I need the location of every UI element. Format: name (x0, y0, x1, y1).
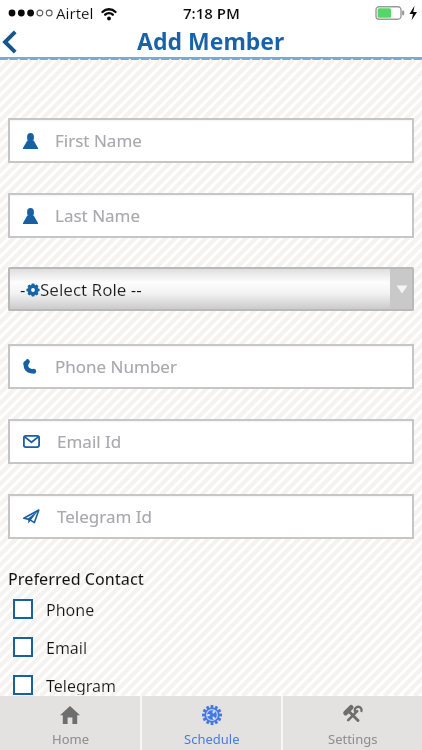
button[interactable]: Email (13, 637, 88, 657)
button[interactable]: Telegram (13, 675, 117, 695)
staticText: Last Name (55, 204, 141, 227)
button[interactable]: - (8, 267, 414, 311)
button[interactable]: Home (0, 696, 140, 750)
button[interactable]: Phone (13, 599, 95, 619)
button[interactable]: Email Id (8, 419, 414, 464)
button[interactable]: First Name (8, 118, 414, 163)
staticText: Telegram (46, 675, 117, 695)
staticText: Email Id (57, 430, 122, 453)
button[interactable]: Schedule (142, 696, 281, 750)
button[interactable]: Phone Number (8, 344, 414, 389)
staticText: First Name (55, 129, 142, 152)
staticText: Email (46, 637, 88, 657)
staticText: Home (52, 730, 89, 748)
button[interactable]: Settings (283, 696, 422, 750)
staticText: Phone Number (55, 355, 177, 378)
staticText: Phone (46, 599, 95, 619)
button[interactable] (0, 26, 28, 57)
staticText: Telegram Id (57, 505, 153, 528)
staticText: 7:18 PM (183, 3, 240, 23)
staticText: - (20, 278, 26, 301)
staticText: Add Member (137, 25, 285, 56)
staticText: Select Role -- (40, 278, 142, 301)
staticText: Preferred Contact (8, 568, 145, 590)
staticText: Settings (328, 730, 378, 748)
staticText: Schedule (184, 730, 240, 748)
staticText: Airtel (56, 3, 94, 23)
button[interactable]: Telegram Id (8, 494, 414, 539)
button[interactable]: Last Name (8, 193, 414, 238)
